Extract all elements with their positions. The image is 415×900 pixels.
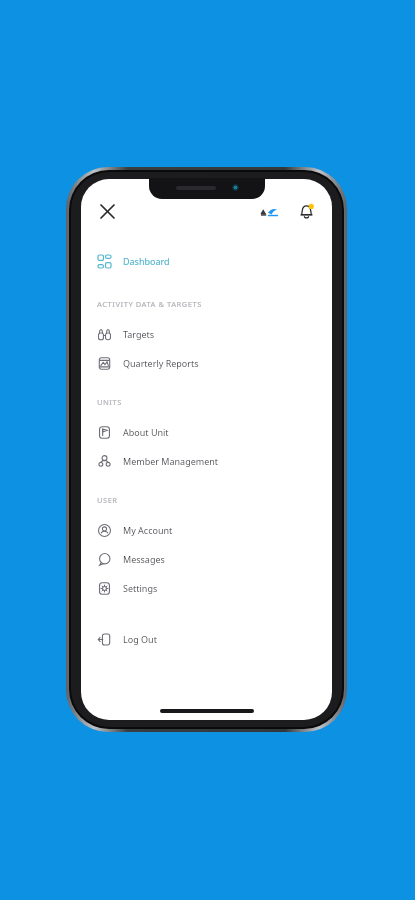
button[interactable]: My Account xyxy=(81,515,332,544)
button[interactable]: Targets xyxy=(81,319,332,348)
staticText: UNITS xyxy=(97,397,122,407)
button[interactable]: Brand logo xyxy=(257,200,283,222)
staticText: Quarterly Reports xyxy=(123,357,199,369)
button[interactable]: Close xyxy=(94,198,120,224)
staticText: About Unit xyxy=(123,426,169,438)
button[interactable]: Quarterly Reports xyxy=(81,348,332,377)
button[interactable]: Messages xyxy=(81,544,332,573)
staticText: Dashboard xyxy=(123,255,170,267)
staticText: My Account xyxy=(123,524,173,536)
staticText: Settings xyxy=(123,582,158,594)
staticText: USER xyxy=(97,495,118,505)
staticText: Targets xyxy=(123,328,155,340)
staticText: Member Management xyxy=(123,455,219,467)
button[interactable]: Dashboard xyxy=(81,246,332,275)
button[interactable]: Settings xyxy=(81,573,332,602)
staticText: Messages xyxy=(123,553,165,565)
button[interactable]: Notifications xyxy=(293,198,319,224)
button[interactable]: About Unit xyxy=(81,417,332,446)
staticText: ACTIVITY DATA & TARGETS xyxy=(97,299,202,309)
staticText: Log Out xyxy=(123,633,157,645)
button[interactable]: Log Out xyxy=(81,624,332,653)
button[interactable]: Member Management xyxy=(81,446,332,475)
